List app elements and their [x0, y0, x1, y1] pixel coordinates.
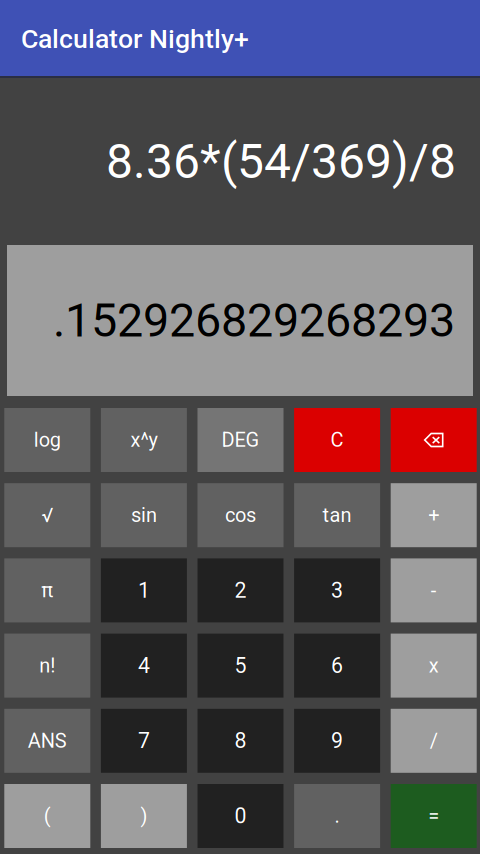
staticText: 6 — [331, 653, 343, 678]
staticText: x — [429, 654, 439, 677]
staticText: 7 — [138, 728, 150, 753]
button[interactable]: ( — [4, 784, 90, 848]
button[interactable]: √ — [4, 483, 90, 547]
button[interactable]: C — [294, 408, 380, 472]
staticText: 2 — [234, 578, 246, 603]
staticText: 0 — [234, 803, 246, 828]
staticText: Calculator Nightly+ — [21, 23, 249, 55]
staticText: 9 — [331, 728, 343, 753]
staticText: n! — [39, 654, 55, 677]
staticText: tan — [323, 503, 352, 527]
button[interactable]: 8 — [197, 709, 283, 773]
button[interactable]: 9 — [294, 709, 380, 773]
staticText: ( — [44, 804, 51, 828]
button[interactable]: - — [391, 558, 477, 622]
button[interactable]: 1 — [101, 558, 187, 622]
button[interactable]: = — [391, 784, 477, 848]
staticText: 8 — [234, 728, 246, 753]
staticText: 1 — [138, 578, 150, 603]
button[interactable]: 5 — [197, 634, 283, 698]
staticText: cos — [225, 503, 256, 527]
staticText: C — [331, 428, 344, 452]
staticText: - — [431, 579, 437, 602]
staticText: .152926829268293 — [53, 293, 455, 348]
staticText: 8.36*(54/369)/8 — [106, 133, 456, 190]
staticText: log — [34, 428, 61, 452]
staticText: ANS — [28, 729, 67, 752]
button[interactable]: 3 — [294, 558, 380, 622]
button[interactable]: ANS — [4, 709, 90, 773]
button[interactable]: x^y — [101, 408, 187, 472]
button[interactable]: n! — [4, 634, 90, 698]
staticText: + — [428, 503, 439, 527]
button[interactable]: tan — [294, 483, 380, 547]
staticText: 4 — [138, 653, 150, 678]
staticText: 3 — [331, 578, 343, 603]
button[interactable]: + — [391, 483, 477, 547]
button[interactable]: sin — [101, 483, 187, 547]
button[interactable]: x — [391, 634, 477, 698]
button[interactable]: cos — [197, 483, 283, 547]
staticText: = — [428, 804, 439, 828]
staticText: 5 — [234, 653, 246, 678]
staticText: π — [41, 579, 53, 602]
staticText: √ — [41, 503, 53, 527]
staticText: DEG — [221, 428, 259, 452]
staticText: sin — [131, 503, 157, 527]
button[interactable]: 7 — [101, 709, 187, 773]
button[interactable]: π — [4, 558, 90, 622]
staticText: / — [430, 729, 438, 752]
staticText: . — [335, 804, 340, 828]
staticText: ) — [140, 804, 147, 828]
button[interactable]: 0 — [197, 784, 283, 848]
button[interactable]: log — [4, 408, 90, 472]
staticText: x^y — [130, 428, 157, 452]
button[interactable]: 4 — [101, 634, 187, 698]
button[interactable]: ) — [101, 784, 187, 848]
button[interactable]: DEG — [197, 408, 283, 472]
button[interactable]: 2 — [197, 558, 283, 622]
button[interactable]: Backspace — [391, 408, 477, 472]
button[interactable]: . — [294, 784, 380, 848]
button[interactable]: / — [391, 709, 477, 773]
button[interactable]: 6 — [294, 634, 380, 698]
